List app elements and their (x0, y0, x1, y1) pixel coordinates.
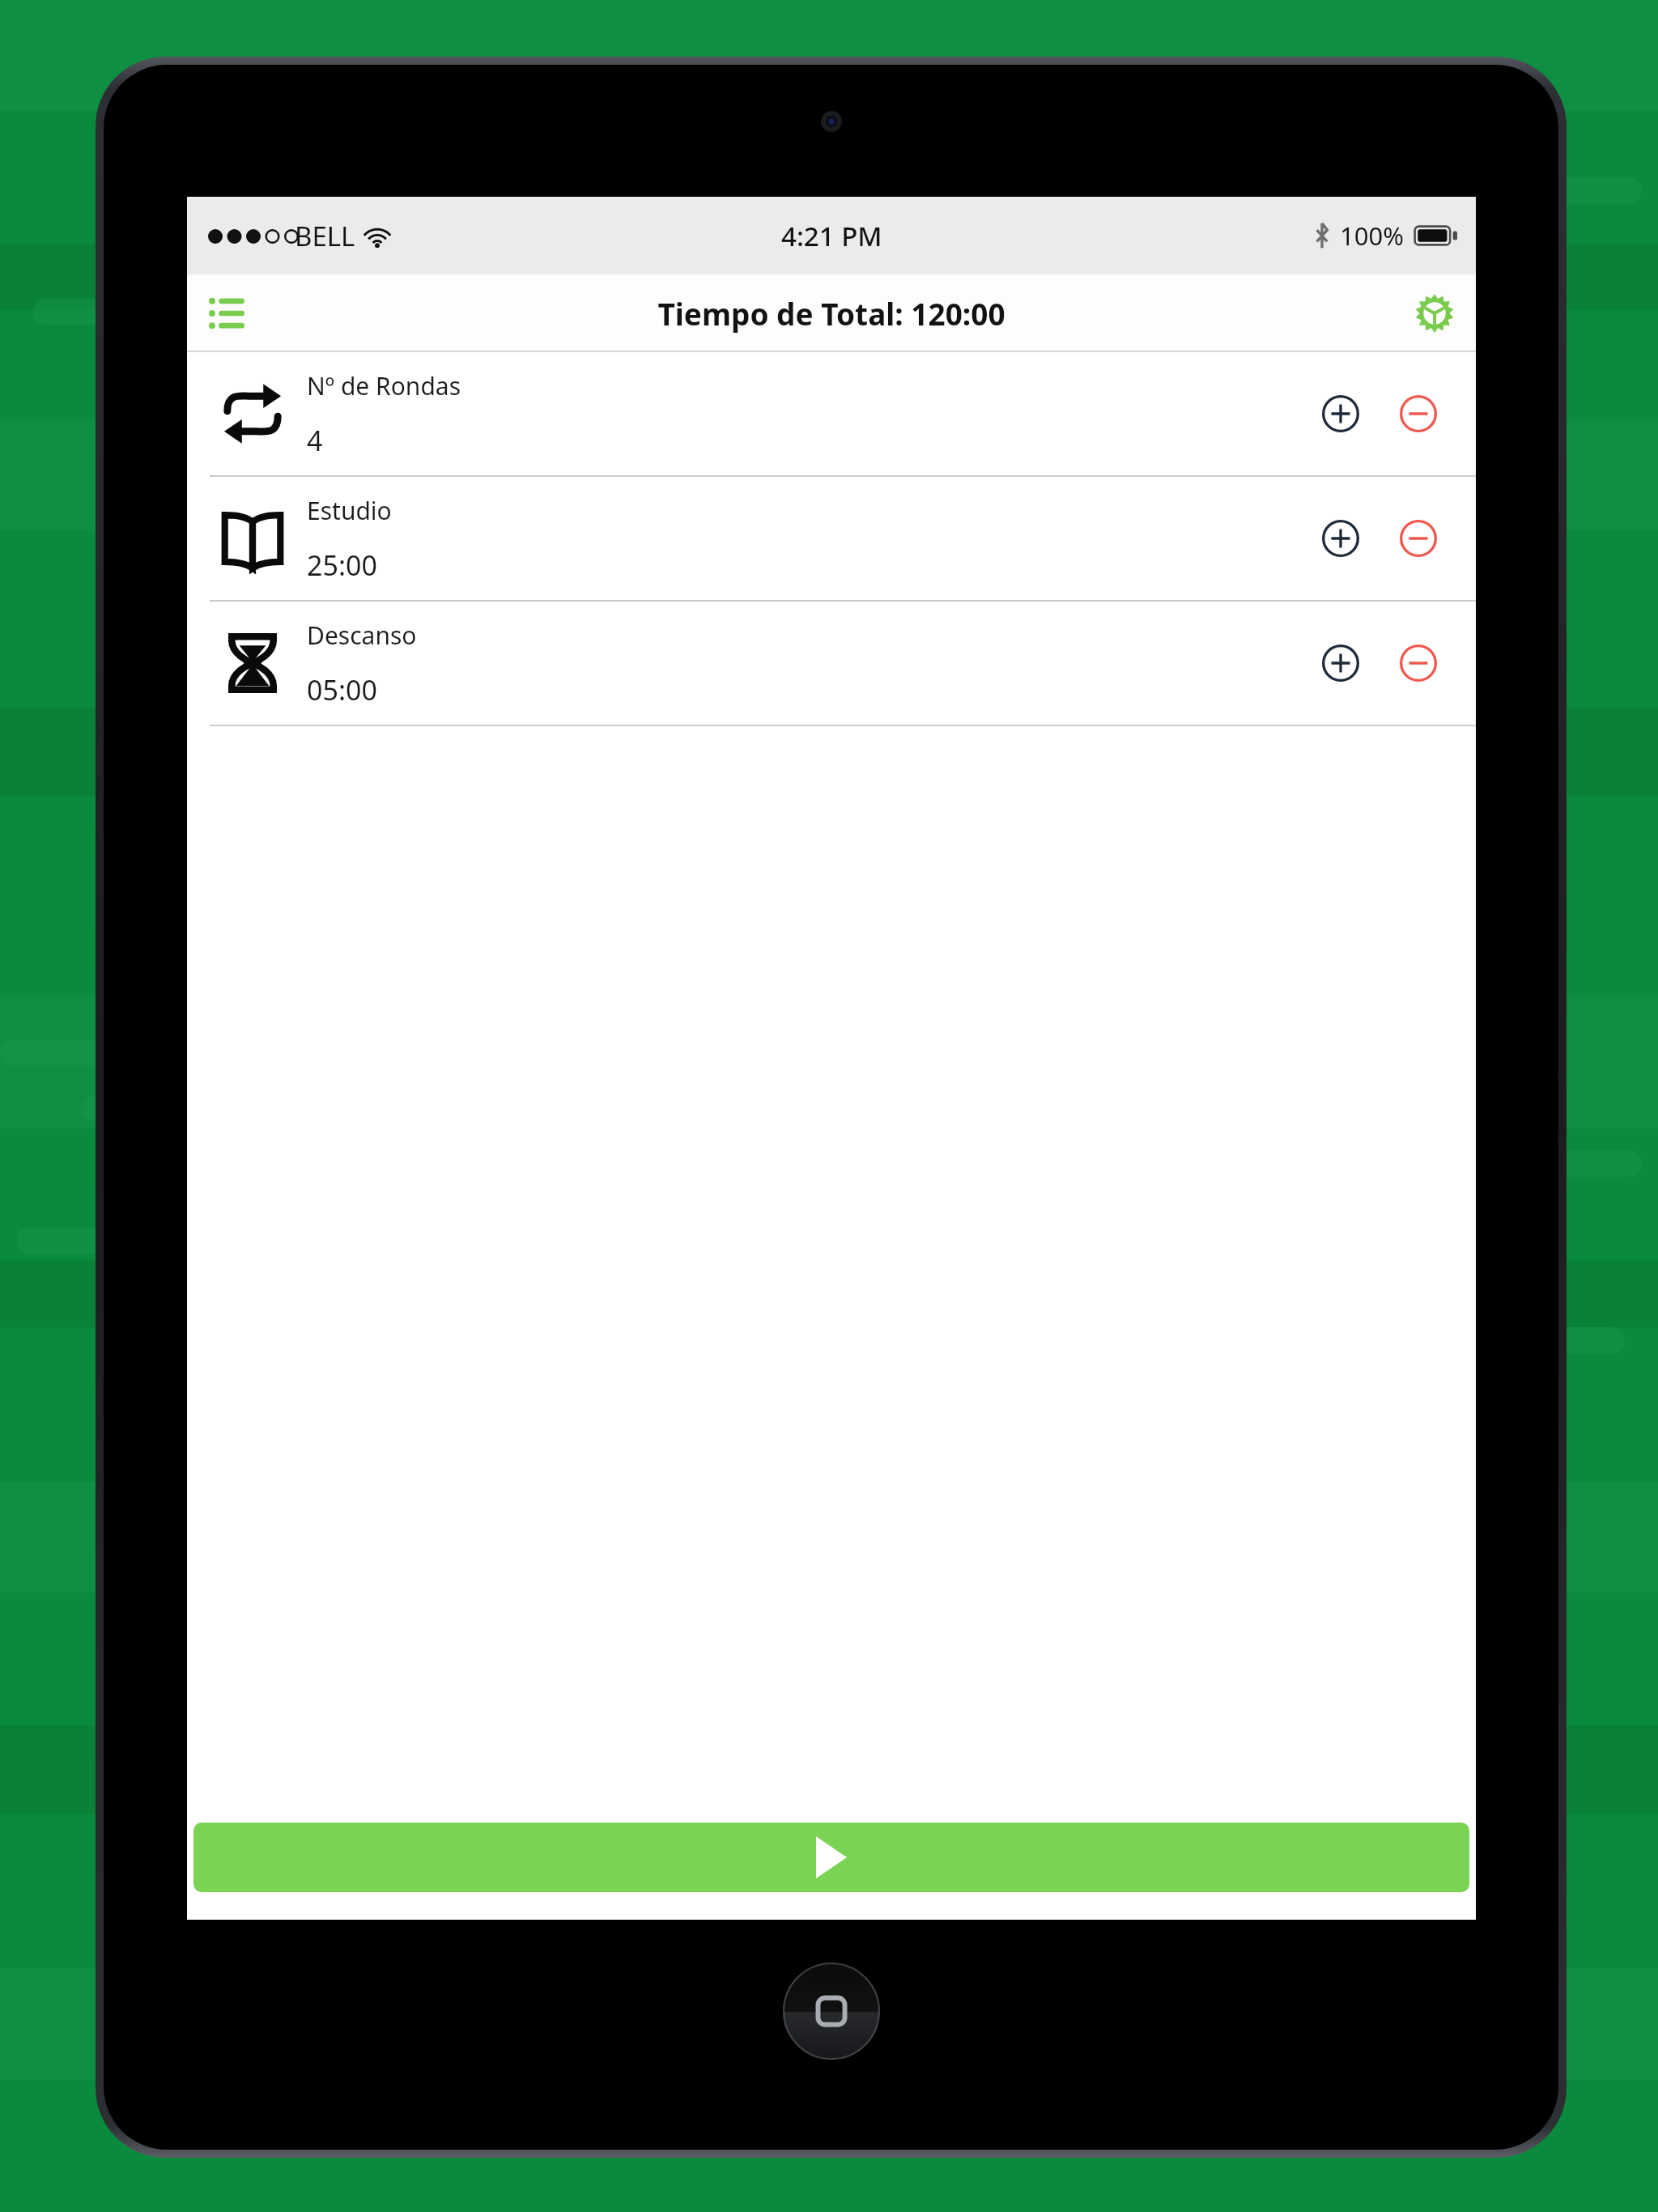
staticText: Tiempo de Total: 120:00 (657, 293, 1005, 334)
staticText: Estudio (307, 494, 392, 527)
staticText: 25:00 (307, 547, 377, 584)
button[interactable]: Increase Descanso (1307, 630, 1374, 696)
button[interactable]: Decrease Descanso (1385, 630, 1452, 696)
staticText: Descanso (307, 619, 417, 652)
button[interactable]: Settings (1405, 283, 1465, 343)
staticText: 4 (307, 422, 323, 459)
staticText: BELL (295, 218, 355, 254)
button[interactable]: Decrease Nº de Rondas (1385, 381, 1452, 447)
staticText: 05:00 (307, 671, 377, 708)
staticText: 100% (1340, 219, 1404, 253)
staticText: 4:21 PM (781, 218, 882, 254)
button[interactable]: Decrease Estudio (1385, 505, 1452, 572)
button[interactable]: Increase Estudio (1307, 505, 1374, 572)
button[interactable]: Start (193, 1823, 1469, 1892)
button[interactable]: Home (784, 1963, 879, 2059)
button[interactable]: Nº de Rondas (187, 352, 1476, 475)
button[interactable]: Estudio (187, 477, 1476, 600)
button[interactable]: Menu (197, 283, 257, 343)
button[interactable]: Increase Nº de Rondas (1307, 381, 1374, 447)
staticText: Nº de Rondas (307, 369, 461, 402)
button[interactable]: Descanso (187, 602, 1476, 725)
